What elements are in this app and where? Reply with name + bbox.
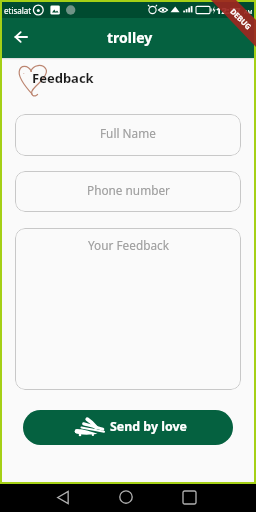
button[interactable]: Full Name	[15, 114, 241, 156]
staticText: etisalat	[4, 5, 32, 16]
staticText: Feedback	[32, 69, 94, 87]
button[interactable]: Recent apps	[176, 484, 202, 510]
staticText: trolley	[107, 28, 153, 47]
staticText: Phone number	[87, 182, 170, 198]
staticText: Send by love	[110, 418, 187, 435]
button[interactable]: Send by love	[23, 410, 233, 445]
button[interactable]: Back	[7, 23, 35, 51]
staticText: Your Feedback	[88, 237, 169, 253]
staticText: DEBUG	[228, 6, 254, 32]
button[interactable]: Home	[113, 484, 139, 510]
staticText: Full Name	[100, 125, 156, 141]
button[interactable]: Your Feedback	[15, 228, 241, 390]
button[interactable]: Phone number	[15, 171, 241, 212]
staticText: 12:37	[216, 4, 241, 17]
button[interactable]: Back	[50, 484, 76, 510]
staticText: AM	[244, 8, 253, 15]
